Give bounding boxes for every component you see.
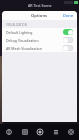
button[interactable]: Rotate (2, 125, 15, 139)
button[interactable]: On (63, 29, 73, 35)
staticText: Default Lighting (6, 30, 63, 35)
staticText: AR Mesh Visualization (6, 46, 63, 51)
button[interactable]: Done (60, 12, 77, 19)
button[interactable]: Settings (64, 125, 77, 139)
staticText: VISUALIZATION (6, 23, 28, 27)
button[interactable]: Default Lighting (2, 28, 77, 36)
staticText: Done (63, 13, 74, 18)
button[interactable]: Layers (49, 125, 62, 139)
button[interactable]: Capture (33, 125, 46, 139)
button[interactable]: Off (63, 45, 73, 51)
button[interactable]: AR Mesh Visualization (2, 44, 77, 52)
button[interactable]: Debug Visualization (2, 36, 77, 44)
staticText: AR Test Scene (28, 3, 52, 8)
button[interactable]: Off (63, 37, 73, 43)
button[interactable]: Grid (18, 125, 31, 139)
staticText: Debug Visualization (6, 38, 63, 43)
staticText: Options (31, 13, 48, 19)
